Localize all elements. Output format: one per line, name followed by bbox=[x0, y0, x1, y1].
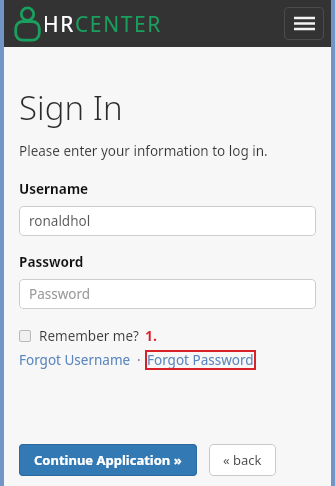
staticText: · bbox=[137, 351, 141, 369]
staticText: CENTER bbox=[75, 10, 162, 39]
staticText: Please enter your information to log in. bbox=[19, 142, 268, 160]
staticText: Remember me? bbox=[39, 327, 139, 345]
button[interactable]: Remember me? bbox=[19, 326, 157, 345]
staticText: ronaldhol bbox=[29, 212, 91, 230]
button[interactable]: Password bbox=[19, 279, 316, 309]
staticText: Username bbox=[19, 180, 89, 198]
staticText: Forgot Username bbox=[19, 351, 131, 369]
button[interactable]: Forgot Username bbox=[19, 351, 131, 369]
button[interactable]: Continue Application » bbox=[19, 444, 197, 476]
button[interactable]: Forgot Password bbox=[145, 350, 256, 370]
button[interactable]: Menu bbox=[284, 7, 324, 40]
staticText: HR bbox=[43, 10, 75, 39]
button[interactable]: « back bbox=[209, 444, 276, 476]
button[interactable]: HR Center home bbox=[12, 6, 162, 42]
staticText: Sign In bbox=[19, 85, 123, 130]
staticText: Password bbox=[29, 285, 91, 303]
button[interactable]: Username bbox=[19, 206, 316, 236]
staticText: Password bbox=[19, 253, 84, 271]
staticText: Forgot Password bbox=[147, 351, 254, 369]
staticText: « back bbox=[223, 451, 262, 469]
staticText: 1. bbox=[145, 326, 157, 345]
staticText: Continue Application » bbox=[34, 451, 182, 469]
